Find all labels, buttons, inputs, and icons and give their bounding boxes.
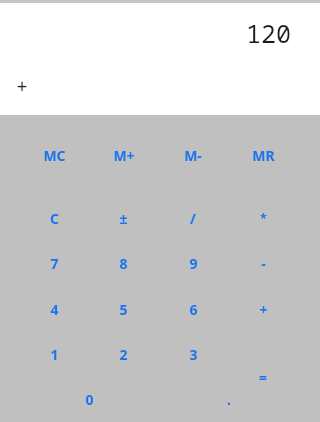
staticText: 0 bbox=[85, 390, 94, 409]
button[interactable]: M- bbox=[158, 115, 228, 195]
button[interactable]: ± bbox=[89, 195, 158, 241]
staticText: . bbox=[227, 390, 231, 409]
staticText: + bbox=[16, 72, 28, 99]
button[interactable]: 5 bbox=[89, 286, 158, 332]
staticText: - bbox=[261, 254, 266, 273]
button[interactable]: + bbox=[228, 286, 298, 332]
staticText: M- bbox=[184, 146, 202, 165]
staticText: / bbox=[190, 209, 196, 228]
staticText: = bbox=[259, 368, 268, 387]
staticText: 1 bbox=[50, 345, 59, 364]
button[interactable]: M+ bbox=[89, 115, 158, 195]
staticText: 3 bbox=[189, 345, 198, 364]
button[interactable]: 0 bbox=[20, 377, 159, 422]
staticText: M+ bbox=[113, 146, 135, 165]
button[interactable]: - bbox=[228, 241, 298, 286]
staticText: MC bbox=[43, 146, 66, 165]
button[interactable]: 3 bbox=[158, 332, 228, 377]
button[interactable]: 6 bbox=[158, 286, 228, 332]
staticText: * bbox=[260, 210, 267, 226]
button[interactable]: MC bbox=[20, 115, 89, 195]
button[interactable]: 1 bbox=[20, 332, 89, 377]
staticText: 5 bbox=[119, 300, 128, 319]
button[interactable]: / bbox=[158, 195, 228, 241]
button[interactable]: 7 bbox=[20, 241, 89, 286]
button[interactable]: 2 bbox=[89, 332, 158, 377]
staticText: 9 bbox=[189, 254, 198, 273]
staticText: + bbox=[259, 300, 268, 319]
staticText: C bbox=[50, 209, 59, 228]
staticText: 8 bbox=[119, 254, 128, 273]
staticText: 4 bbox=[50, 300, 59, 319]
button[interactable]: . bbox=[159, 377, 298, 422]
staticText: 7 bbox=[50, 254, 59, 273]
button[interactable]: MR bbox=[228, 115, 298, 195]
staticText: 2 bbox=[119, 345, 128, 364]
button[interactable]: C bbox=[20, 195, 89, 241]
button[interactable]: * bbox=[228, 195, 298, 241]
button[interactable]: = bbox=[228, 332, 298, 422]
button[interactable]: 9 bbox=[158, 241, 228, 286]
button[interactable]: 8 bbox=[89, 241, 158, 286]
staticText: MR bbox=[252, 146, 275, 165]
button[interactable]: 4 bbox=[20, 286, 89, 332]
staticText: 120 bbox=[245, 16, 291, 50]
staticText: ± bbox=[119, 209, 128, 228]
staticText: 6 bbox=[189, 300, 198, 319]
